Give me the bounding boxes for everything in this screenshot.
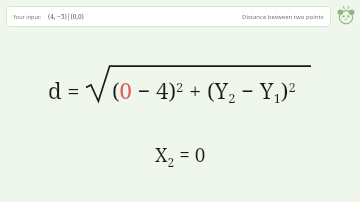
staticText: (4, −5)|(0,0) bbox=[48, 12, 84, 21]
staticText: Your input: bbox=[13, 13, 42, 20]
staticText: d = bbox=[48, 75, 80, 105]
staticText: Distance between two points bbox=[242, 13, 324, 21]
button[interactable]: Your input: bbox=[6, 6, 331, 27]
staticText: (0 − 4)2 + (Y2 − Y1)2 bbox=[112, 75, 296, 107]
button[interactable]: App logo bbox=[336, 6, 356, 26]
staticText: X2 = 0 bbox=[155, 142, 206, 170]
